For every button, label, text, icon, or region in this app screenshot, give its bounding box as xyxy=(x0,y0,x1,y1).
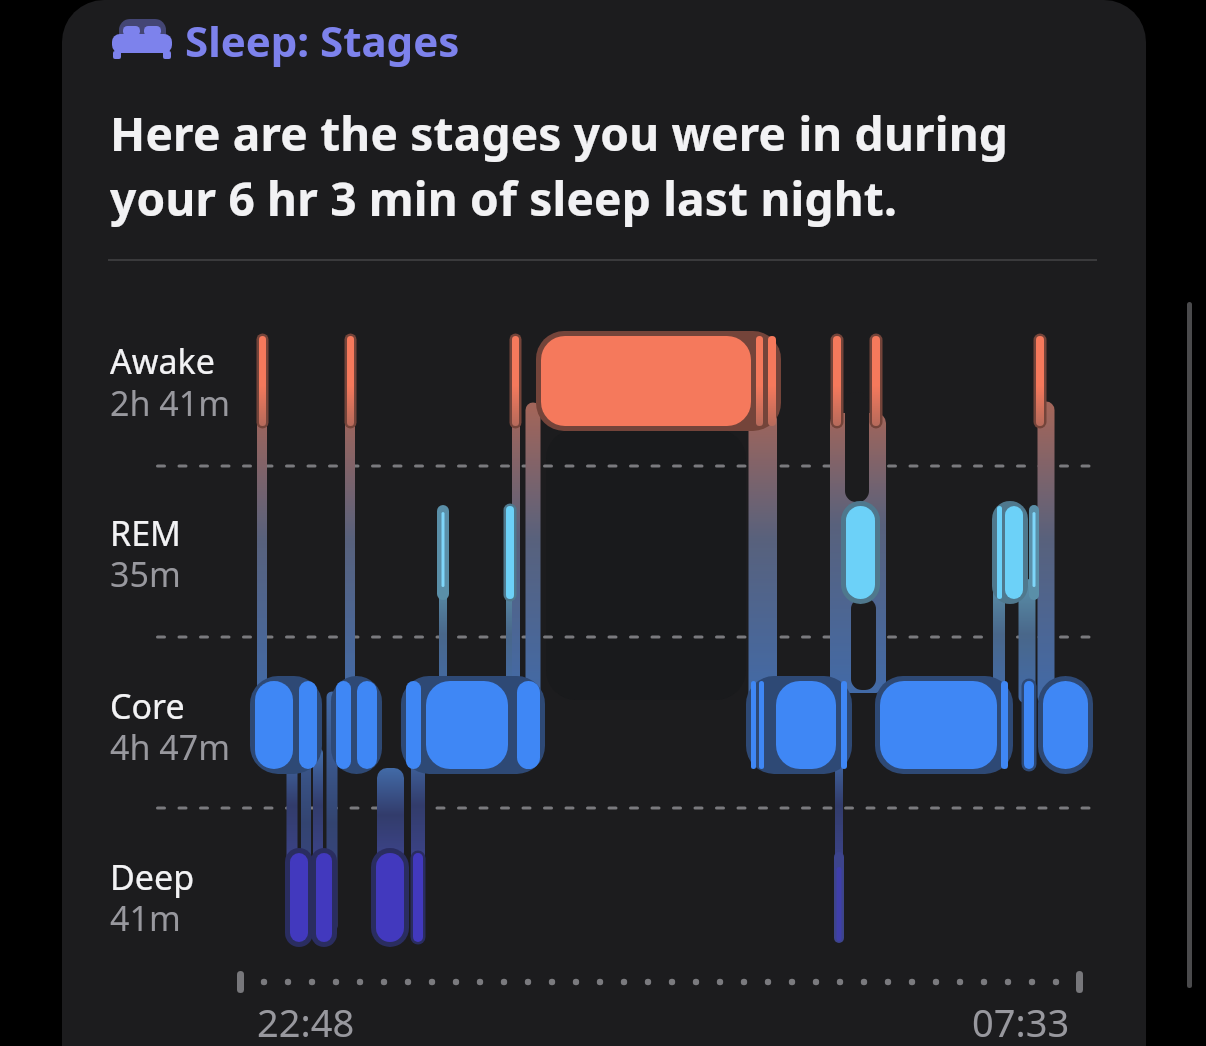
button[interactable]: Sleep: Stages xyxy=(108,12,488,68)
staticText: 22:48 xyxy=(257,996,355,1046)
staticText: Sleep: Stages xyxy=(185,12,460,68)
staticText: 07:33 xyxy=(972,996,1070,1046)
staticText: Here are the stages you were in during y… xyxy=(110,102,1009,229)
staticText: 4h 47m xyxy=(110,724,230,770)
staticText: Core xyxy=(110,683,185,729)
staticText: 41m xyxy=(110,895,181,941)
staticText: Deep xyxy=(110,854,195,900)
staticText: 35m xyxy=(110,551,181,597)
staticText: 2h 41m xyxy=(110,380,230,426)
staticText: REM xyxy=(110,510,181,556)
staticText: Awake xyxy=(110,338,215,384)
